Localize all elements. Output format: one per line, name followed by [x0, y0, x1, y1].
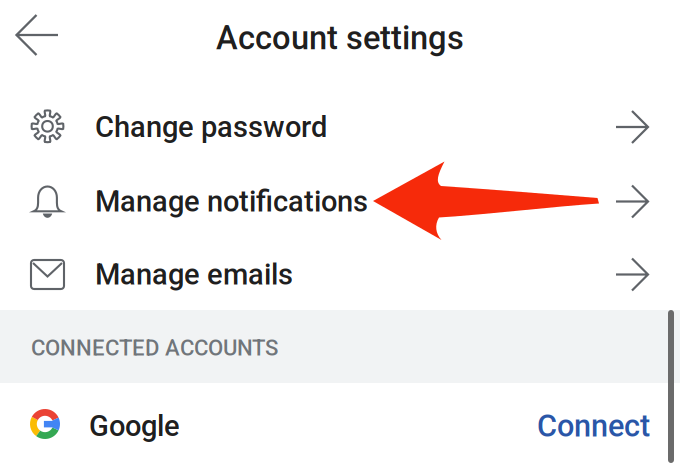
- staticText: CONNECTED ACCOUNTS: [31, 335, 278, 361]
- button[interactable]: Manage notifications: [0, 164, 680, 237]
- button[interactable]: Change password: [0, 90, 680, 164]
- button[interactable]: Back: [0, 0, 59, 56]
- staticText: Change password: [95, 110, 327, 144]
- staticText: Manage notifications: [95, 184, 368, 219]
- staticText: Google: [89, 409, 180, 443]
- button[interactable]: Manage emails: [0, 237, 680, 310]
- staticText: Account settings: [216, 19, 464, 57]
- staticText: Connect: [537, 408, 650, 444]
- staticText: Manage emails: [95, 257, 293, 292]
- button[interactable]: Google: [0, 383, 680, 456]
